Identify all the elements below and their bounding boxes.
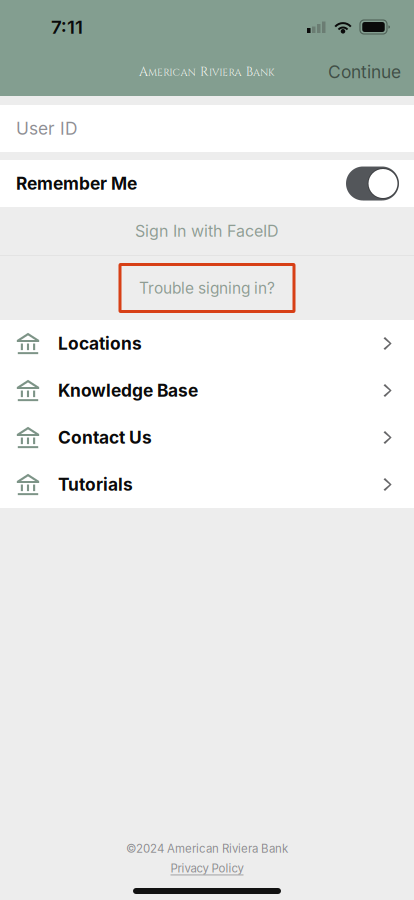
button[interactable]: Sign In with FaceID [0,207,414,255]
staticText: 7:11 [51,16,83,38]
staticText: AMERICAN RIVIERA BANK [139,64,275,80]
button[interactable]: Tutorials [0,461,414,508]
staticText: Trouble signing in? [139,279,275,297]
button[interactable]: Privacy Policy [170,861,243,875]
staticText: Remember Me [16,173,137,194]
staticText: Knowledge Base [58,380,198,401]
staticText: User ID [16,118,78,139]
button[interactable]: Locations [0,320,414,367]
staticText: Locations [58,333,142,354]
button[interactable]: Remember Me [346,160,414,206]
button[interactable]: Trouble signing in? [120,264,294,311]
staticText: Sign In with FaceID [135,221,279,241]
staticText: Continue [328,61,401,82]
button[interactable]: Knowledge Base [0,367,414,414]
staticText: Contact Us [58,427,152,448]
staticText: ©2024 American Riviera Bank [126,842,288,855]
staticText: Privacy Policy [170,861,243,875]
button[interactable]: Continue [315,50,414,93]
button[interactable]: Contact Us [0,414,414,461]
staticText: Tutorials [58,474,133,495]
